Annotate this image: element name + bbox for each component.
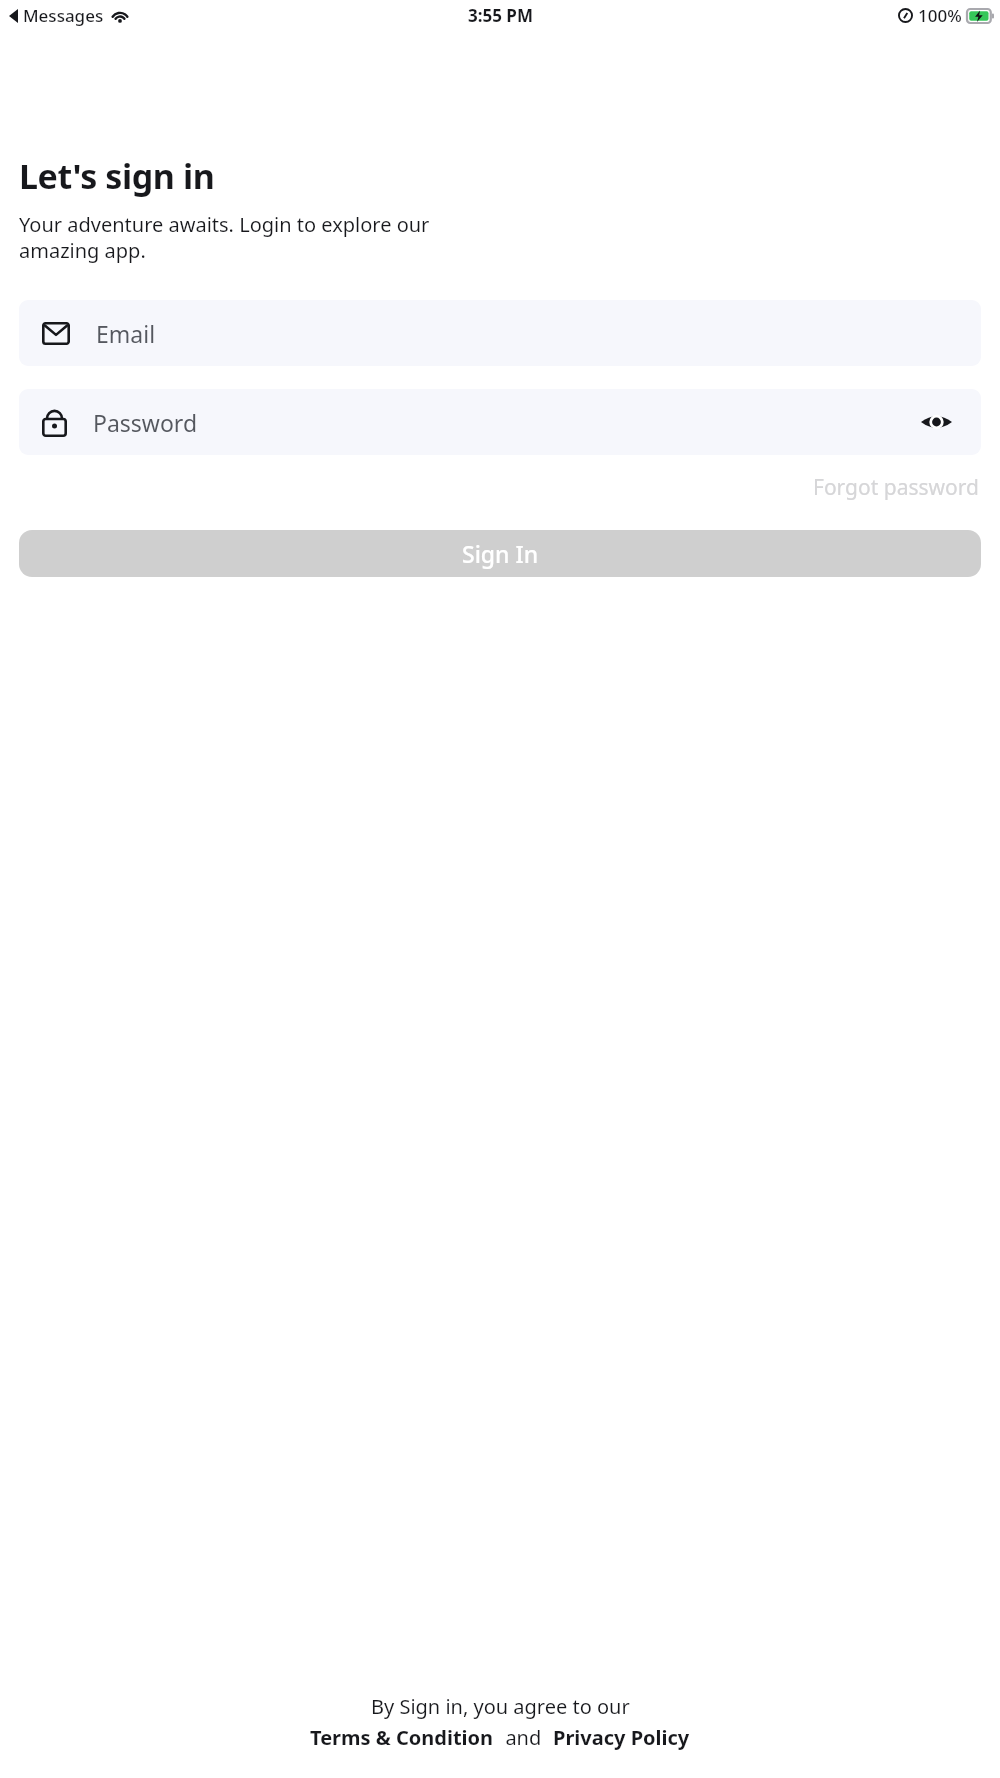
staticText: Email [96,318,156,349]
staticText: Your adventure awaits. Login to explore … [19,211,449,264]
staticText: Sign In [462,538,539,569]
staticText: 100% [918,4,962,27]
staticText: Password [93,407,198,438]
button[interactable]: Show password [914,400,958,444]
button[interactable]: Email [19,300,981,366]
staticText: 3:55 PM [468,4,533,27]
staticText: Messages [23,4,104,27]
button[interactable]: Forgot password [811,469,981,506]
button[interactable]: Terms & Condition [309,1724,495,1751]
staticText: and [495,1724,552,1751]
staticText: Terms & Condition [310,1724,494,1751]
staticText: By Sign in, you agree to our [371,1693,630,1720]
staticText: Let's sign in [19,153,215,199]
staticText: Privacy Policy [553,1724,690,1751]
staticText: Forgot password [813,473,979,502]
button[interactable]: Password [19,389,981,455]
button[interactable]: Privacy Policy [552,1724,691,1751]
button[interactable]: Sign In [19,530,981,577]
